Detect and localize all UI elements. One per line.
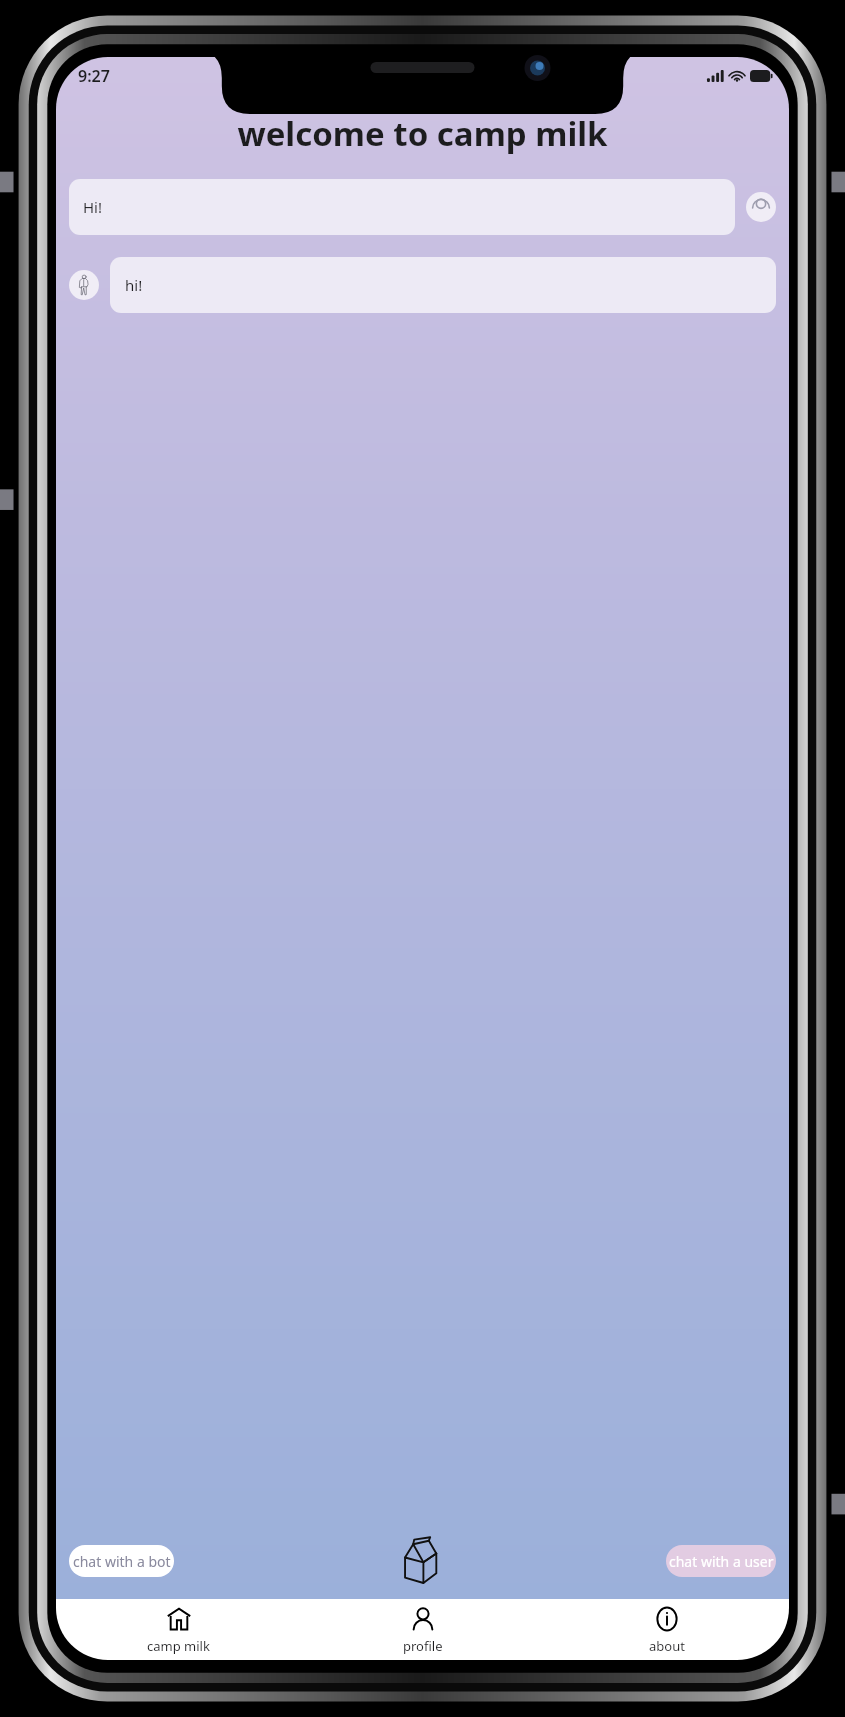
button[interactable]: Bot avatar <box>69 270 99 300</box>
button[interactable]: about <box>545 1606 789 1660</box>
button[interactable]: profile <box>301 1606 545 1660</box>
staticText: hi! <box>125 275 143 295</box>
button[interactable]: camp milk <box>56 1606 301 1660</box>
staticText: 9:27 <box>78 65 110 87</box>
button[interactable]: chat with a user <box>666 1545 776 1577</box>
staticText: profile <box>403 1637 443 1655</box>
staticText: camp milk <box>147 1637 210 1655</box>
staticText: Hi! <box>83 197 103 217</box>
button[interactable]: Your profile avatar <box>746 192 776 222</box>
button[interactable]: chat with a bot <box>69 1545 174 1577</box>
staticText: about <box>649 1637 685 1655</box>
button[interactable]: Hi! <box>69 179 735 235</box>
staticText: welcome to camp milk <box>56 111 789 156</box>
staticText: chat with a bot <box>73 1552 171 1571</box>
staticText: chat with a user <box>669 1552 774 1571</box>
button[interactable]: hi! <box>110 257 776 313</box>
button[interactable]: Milk carton <box>403 1539 437 1583</box>
